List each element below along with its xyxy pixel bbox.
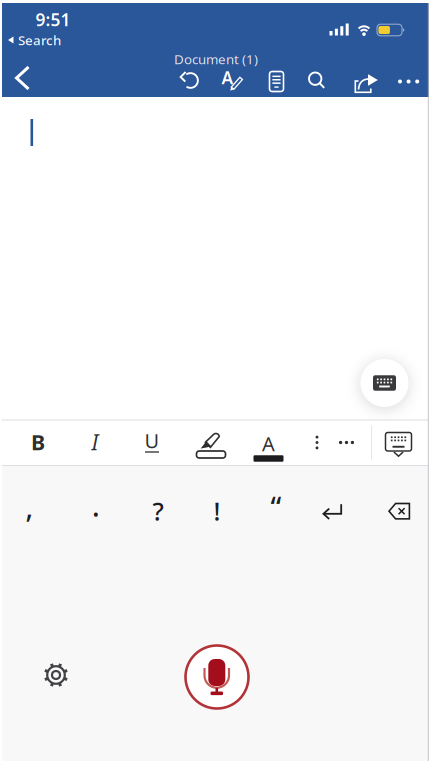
- button[interactable]: [331, 424, 361, 460]
- button[interactable]: [14, 65, 31, 91]
- button[interactable]: .: [74, 489, 118, 533]
- button[interactable]: [269, 71, 284, 92]
- button[interactable]: “: [254, 489, 298, 533]
- button[interactable]: [184, 644, 250, 710]
- button[interactable]: [360, 359, 408, 407]
- staticText: ?: [152, 494, 163, 528]
- button[interactable]: [42, 661, 69, 688]
- button[interactable]: [308, 71, 325, 88]
- button[interactable]: [322, 503, 343, 520]
- staticText: .: [92, 487, 100, 525]
- button[interactable]: A: [248, 423, 288, 463]
- button[interactable]: [196, 429, 228, 459]
- staticText: 9:51: [35, 8, 70, 31]
- button[interactable]: A: [221, 68, 243, 91]
- button[interactable]: !: [195, 489, 239, 533]
- button[interactable]: I: [75, 422, 115, 462]
- button[interactable]: U: [132, 422, 172, 462]
- staticText: A: [221, 66, 233, 89]
- staticText: ,: [25, 488, 33, 526]
- button[interactable]: [306, 424, 328, 460]
- button[interactable]: [396, 72, 422, 90]
- staticText: A: [262, 430, 275, 457]
- button[interactable]: [353, 70, 383, 94]
- staticText: Search: [18, 31, 61, 49]
- staticText: B: [31, 428, 45, 456]
- staticText: Document (1): [174, 50, 258, 68]
- button[interactable]: [180, 70, 200, 90]
- staticText: U: [144, 427, 159, 454]
- button[interactable]: Search: [4, 32, 64, 48]
- button[interactable]: [388, 502, 411, 520]
- button[interactable]: ,: [7, 489, 51, 533]
- button[interactable]: ?: [136, 489, 180, 533]
- staticText: !: [213, 494, 220, 528]
- button[interactable]: [384, 430, 412, 457]
- staticText: I: [91, 428, 98, 456]
- staticText: “: [270, 488, 281, 526]
- button[interactable]: B: [18, 422, 58, 462]
